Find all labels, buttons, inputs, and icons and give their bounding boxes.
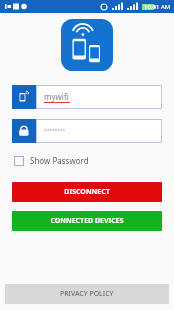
button[interactable]: •••••••• [12, 119, 162, 143]
staticText: 10:01 AM [144, 3, 171, 11]
button[interactable]: DISCONNECT [12, 182, 162, 202]
staticText: Show Password [30, 155, 89, 166]
staticText: CONNECTED DEVICES [50, 216, 124, 226]
staticText: PRIVACY POLICY [60, 289, 114, 299]
button[interactable]: PRIVACY POLICY [5, 284, 169, 304]
button[interactable]: Show Password [12, 153, 91, 168]
staticText: DISCONNECT [64, 187, 110, 197]
button[interactable]: CONNECTED DEVICES [12, 211, 162, 231]
staticText: •••••••• [44, 126, 66, 136]
button[interactable]: mywifi [12, 85, 162, 109]
staticText: mywifi [44, 91, 69, 102]
